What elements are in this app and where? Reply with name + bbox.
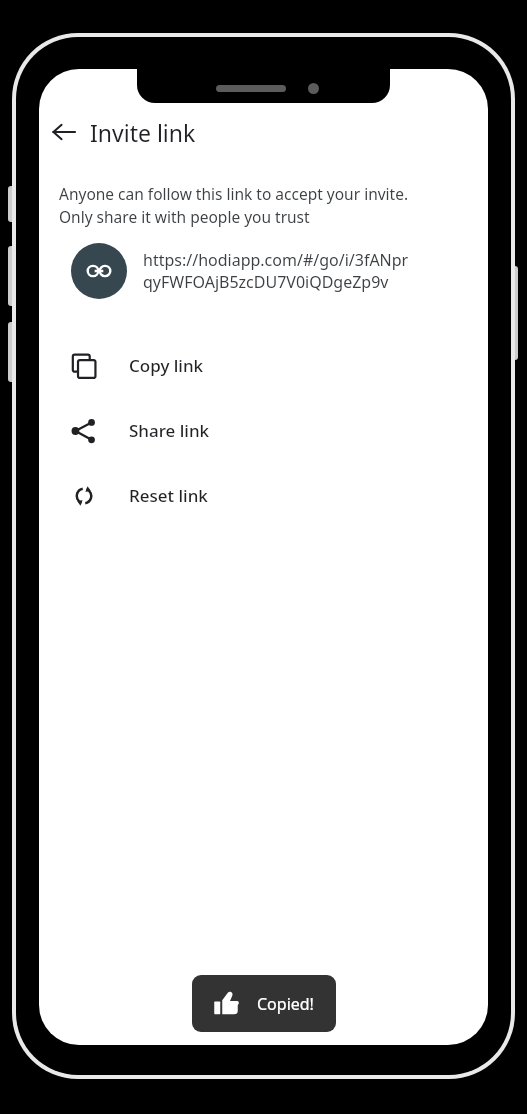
button[interactable]: https://hodiapp.com/#/go/i/3fANpr [71, 243, 478, 299]
staticText: Copied! [257, 993, 314, 1015]
button[interactable]: Share link [39, 398, 488, 463]
staticText: Share link [129, 419, 210, 442]
staticText: https://hodiapp.com/#/go/i/3fANpr [143, 249, 409, 271]
staticText: Invite link [90, 117, 196, 148]
button[interactable]: Reset link [39, 463, 488, 528]
button[interactable]: Back [41, 109, 87, 155]
staticText: qyFWFOAjB5zcDU7V0iQDgeZp9v [143, 271, 389, 293]
staticText: Anyone can follow this link to accept yo… [59, 183, 409, 204]
staticText: Only share it with people you trust [59, 206, 310, 227]
staticText: Reset link [129, 484, 208, 507]
staticText: Copy link [129, 354, 204, 377]
button[interactable]: Copied! [192, 975, 336, 1032]
button[interactable]: Copy link [39, 333, 488, 398]
